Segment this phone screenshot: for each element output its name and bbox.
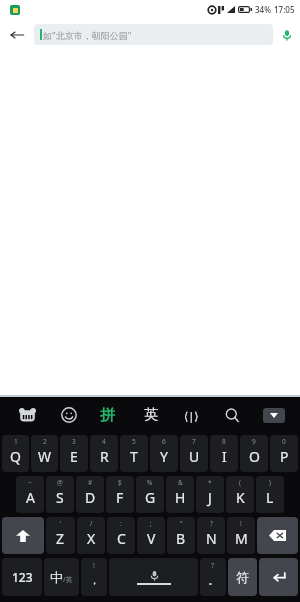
- button[interactable]: :: [107, 517, 135, 554]
- button[interactable]: ;: [137, 517, 165, 554]
- staticText: ，: [89, 573, 100, 587]
- staticText: ?: [210, 519, 213, 528]
- staticText: N: [206, 529, 217, 548]
- staticText: T: [130, 447, 138, 466]
- staticText: 123: [12, 569, 33, 585]
- staticText: ;: [150, 519, 152, 528]
- staticText: L: [266, 488, 274, 507]
- staticText: 英: [144, 406, 158, 424]
- staticText: /: [90, 519, 93, 528]
- button[interactable]: ": [167, 517, 195, 554]
- button[interactable]: ': [46, 517, 75, 554]
- button[interactable]: Emoji: [48, 400, 89, 430]
- button[interactable]: ?: [200, 558, 226, 596]
- button[interactable]: 2: [31, 435, 58, 472]
- button[interactable]: $: [106, 476, 134, 513]
- button[interactable]: Baidu input: [6, 400, 48, 430]
- button[interactable]: Hide keyboard: [253, 400, 294, 430]
- staticText: /英: [63, 575, 73, 585]
- staticText: Z: [56, 529, 65, 548]
- staticText: 0: [282, 437, 286, 446]
- button[interactable]: 7: [180, 435, 208, 472]
- button[interactable]: 中: [44, 558, 79, 596]
- button[interactable]: 123: [2, 558, 42, 596]
- staticText: S: [56, 488, 64, 507]
- staticText: P: [280, 447, 289, 466]
- button[interactable]: 0: [270, 435, 298, 472]
- staticText: U: [189, 447, 200, 466]
- button[interactable]: *: [196, 476, 224, 513]
- button[interactable]: !: [81, 558, 107, 596]
- button[interactable]: 如"北京市，朝阳公园": [34, 24, 273, 45]
- staticText: 7: [192, 437, 196, 446]
- button[interactable]: (: [226, 476, 254, 513]
- staticText: J: [208, 488, 212, 507]
- staticText: @: [57, 478, 63, 487]
- button[interactable]: 1: [2, 435, 29, 472]
- button[interactable]: ~: [16, 476, 44, 513]
- button[interactable]: 3: [60, 435, 88, 472]
- staticText: O: [249, 447, 260, 466]
- button[interactable]: 9: [240, 435, 268, 472]
- staticText: *: [208, 478, 212, 487]
- staticText: 9: [252, 437, 256, 446]
- button[interactable]: Layout: [171, 400, 212, 430]
- staticText: 。: [208, 573, 219, 587]
- staticText: 8: [222, 437, 226, 446]
- staticText: 4: [102, 437, 106, 446]
- button[interactable]: 8: [210, 435, 238, 472]
- button[interactable]: 5: [120, 435, 148, 472]
- staticText: 34%: [255, 4, 271, 15]
- staticText: 17:05: [274, 4, 295, 15]
- staticText: %: [147, 478, 153, 487]
- staticText: A: [26, 488, 35, 507]
- button[interactable]: !: [227, 517, 255, 554]
- staticText: $: [118, 478, 122, 487]
- button[interactable]: 4: [90, 435, 118, 472]
- staticText: I: [222, 447, 227, 466]
- staticText: H: [175, 488, 186, 507]
- button[interactable]: Backspace: [257, 517, 298, 554]
- staticText: ": [180, 519, 183, 528]
- staticText: 3: [72, 437, 76, 446]
- staticText: D: [85, 488, 96, 507]
- staticText: (: [239, 478, 241, 487]
- button[interactable]: 符: [228, 558, 257, 596]
- staticText: V: [147, 529, 156, 548]
- button[interactable]: %: [136, 476, 164, 513]
- staticText: K: [236, 488, 245, 507]
- staticText: 1: [14, 437, 18, 446]
- staticText: X: [87, 529, 96, 548]
- staticText: !: [240, 519, 242, 528]
- staticText: C: [117, 529, 126, 548]
- button[interactable]: Search: [212, 400, 253, 430]
- staticText: F: [116, 488, 124, 507]
- button[interactable]: #: [76, 476, 104, 513]
- staticText: Y: [160, 447, 168, 466]
- button[interactable]: Shift: [2, 517, 44, 554]
- button[interactable]: /: [77, 517, 105, 554]
- button[interactable]: 英: [130, 400, 171, 430]
- staticText: 中: [50, 569, 63, 585]
- staticText: ~: [28, 478, 32, 487]
- button[interactable]: @: [46, 476, 74, 513]
- staticText: 6: [162, 437, 166, 446]
- staticText: :: [120, 519, 122, 528]
- staticText: Q: [10, 447, 21, 466]
- button[interactable]: 6: [150, 435, 178, 472]
- staticText: G: [145, 488, 156, 507]
- staticText: 拼: [100, 406, 115, 425]
- staticText: 2: [43, 437, 47, 446]
- staticText: R: [100, 447, 109, 466]
- staticText: 5: [132, 437, 136, 446]
- button[interactable]: &: [166, 476, 194, 513]
- button[interactable]: Enter: [259, 558, 298, 596]
- button[interactable]: Back: [0, 19, 34, 50]
- button[interactable]: ?: [197, 517, 225, 554]
- button[interactable]: ): [256, 476, 284, 513]
- button[interactable]: Voice input: [273, 19, 300, 50]
- staticText: #: [88, 478, 93, 487]
- staticText: ?: [211, 561, 215, 571]
- button[interactable]: 拼: [89, 400, 130, 430]
- button[interactable]: Space, voice input: [109, 558, 198, 596]
